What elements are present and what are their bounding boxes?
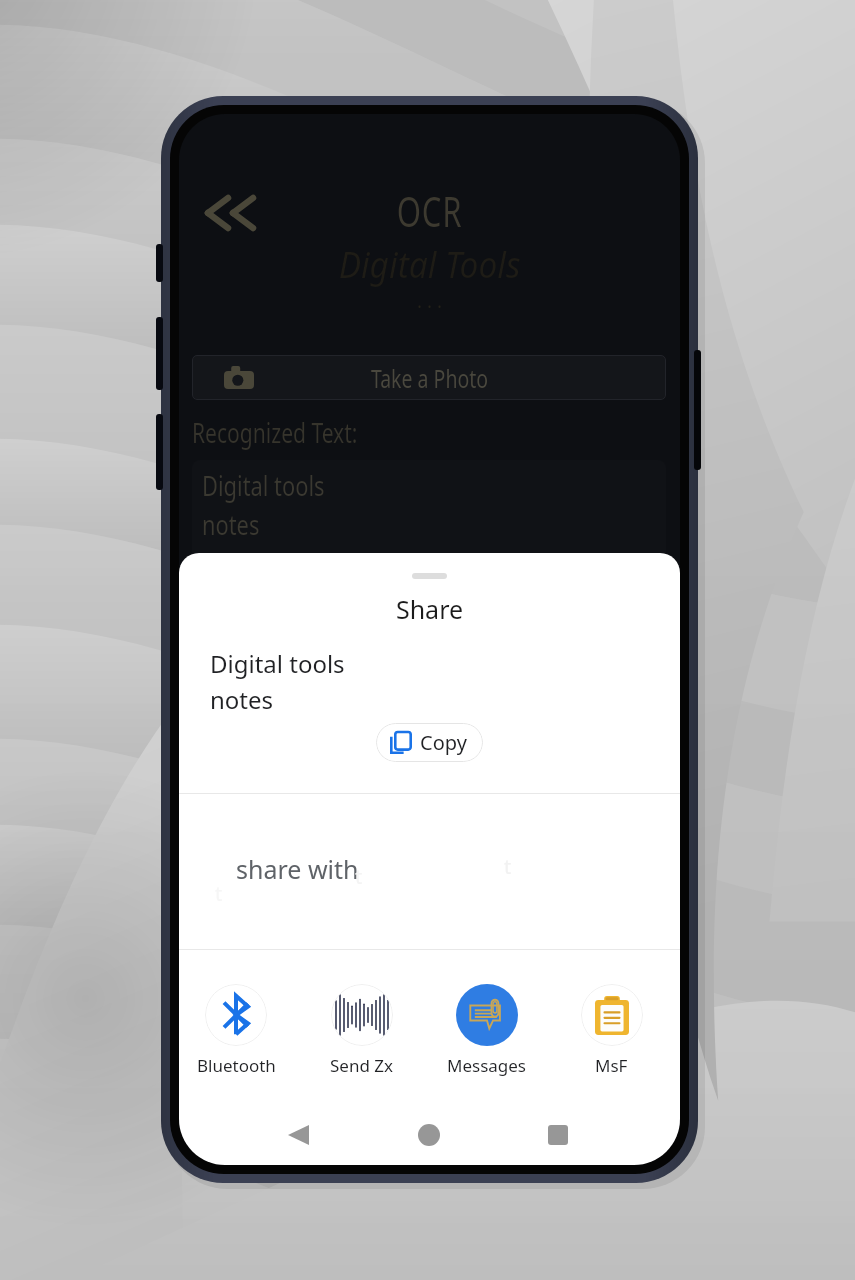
staticText: OCR: [244, 182, 615, 239]
button[interactable]: Back: [275, 1113, 321, 1157]
button[interactable]: Recents: [535, 1113, 581, 1157]
staticText: notes: [202, 505, 260, 543]
staticText: Send Zx: [330, 1054, 394, 1077]
button[interactable]: Home: [406, 1113, 452, 1157]
staticText: Digital tools: [210, 647, 345, 680]
staticText: t: [355, 863, 363, 890]
staticText: MsF: [595, 1054, 628, 1077]
staticText: Digital tools: [202, 466, 325, 504]
staticText: Bluetooth: [197, 1054, 276, 1077]
button[interactable]: MsF: [549, 984, 674, 1077]
staticText: share with: [236, 852, 359, 886]
staticText: Copy: [420, 729, 467, 756]
button[interactable]: Copy: [376, 723, 483, 762]
staticText: Digital Tools: [196, 240, 662, 289]
button[interactable]: Send Zx: [299, 984, 424, 1077]
staticText: Share: [179, 592, 680, 626]
button[interactable]: Bluetooth: [179, 984, 299, 1077]
button[interactable]: Messages: [424, 984, 549, 1077]
button[interactable]: Back: [203, 194, 251, 232]
staticText: Recognized Text:: [192, 414, 358, 451]
staticText: t: [215, 880, 223, 907]
staticText: Take a Photo: [371, 361, 488, 395]
staticText: t: [504, 853, 512, 880]
button[interactable]: Take a Photo: [192, 355, 666, 400]
staticText: Messages: [447, 1054, 527, 1077]
staticText: notes: [210, 683, 274, 716]
